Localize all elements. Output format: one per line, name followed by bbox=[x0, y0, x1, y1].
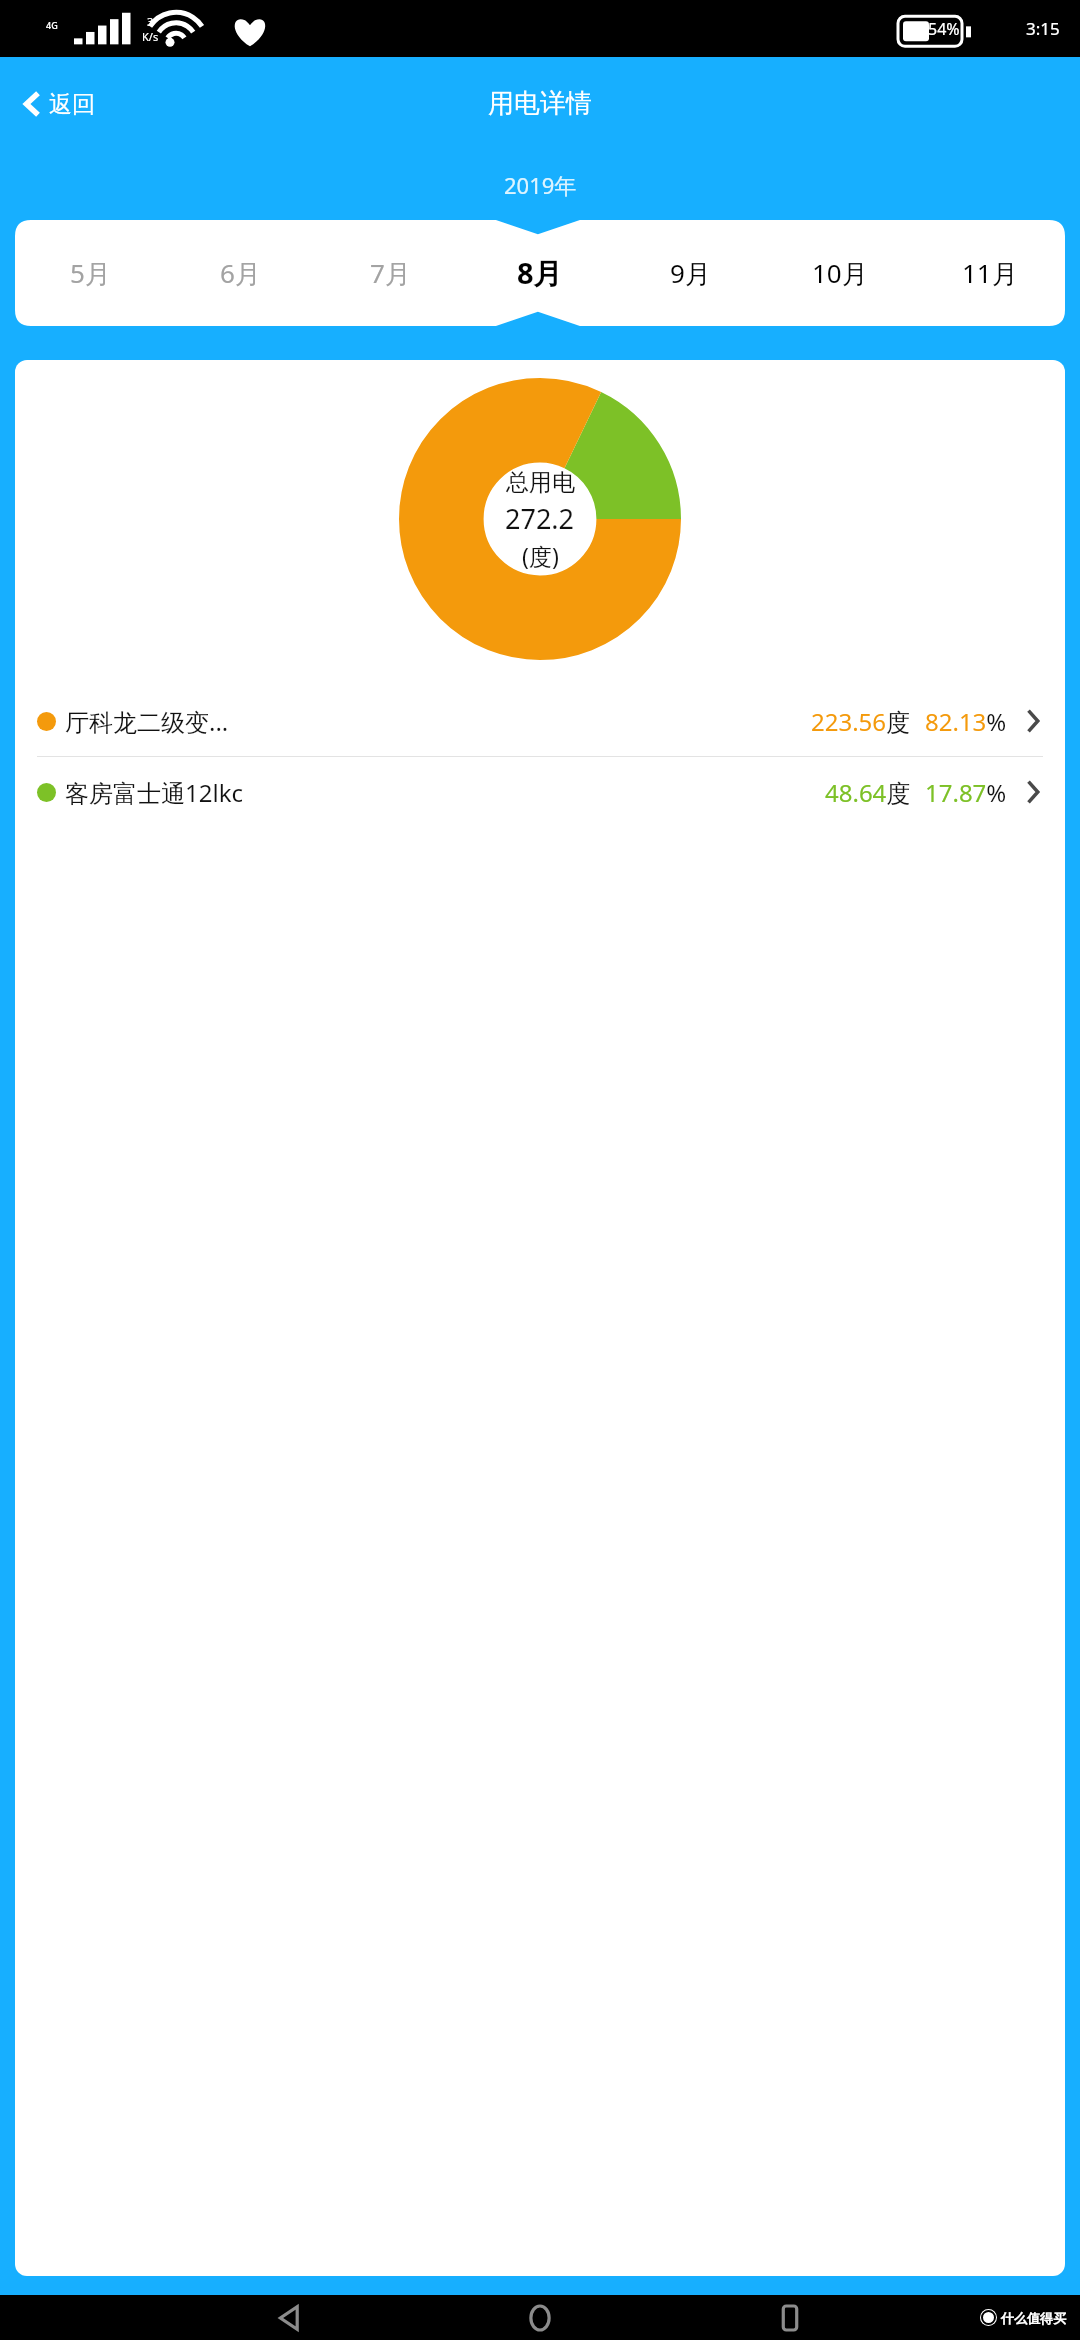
staticText: 2019年 bbox=[504, 170, 577, 200]
button[interactable]: Back bbox=[262, 2295, 318, 2340]
staticText: 4G bbox=[46, 19, 58, 31]
button[interactable]: 7月 bbox=[315, 220, 465, 326]
button[interactable]: 9月 bbox=[615, 220, 765, 326]
staticText: K/s bbox=[142, 29, 159, 44]
staticText: 什么值得买 bbox=[1001, 2310, 1066, 2326]
other: 查看详情 bbox=[1017, 705, 1049, 737]
button[interactable]: 6月 bbox=[165, 220, 315, 326]
button[interactable]: 10月 bbox=[765, 220, 915, 326]
button[interactable]: 5月 bbox=[15, 220, 165, 326]
staticText: 223.56度 bbox=[811, 705, 911, 738]
staticText: 返回 bbox=[49, 90, 95, 119]
staticText: 17.87% bbox=[925, 776, 1007, 809]
staticText: 8月 bbox=[517, 253, 563, 293]
button[interactable]: Home bbox=[512, 2295, 568, 2340]
staticText: 54% bbox=[928, 18, 960, 40]
staticText: 7月 bbox=[370, 255, 411, 291]
staticText: (度) bbox=[522, 540, 559, 571]
staticText: 总用电 bbox=[506, 468, 575, 497]
staticText: 82.13% bbox=[925, 705, 1007, 738]
staticText: 48.64度 bbox=[825, 776, 911, 809]
button[interactable]: Recents bbox=[762, 2295, 818, 2340]
staticText: 272.2 bbox=[505, 500, 575, 537]
button[interactable]: 11月 bbox=[915, 220, 1065, 326]
button[interactable]: 8月 bbox=[465, 220, 615, 326]
button[interactable]: 厅科龙二级变... bbox=[15, 686, 1065, 756]
staticText: 用电详情 bbox=[488, 87, 592, 120]
button[interactable]: 返回 bbox=[12, 81, 105, 127]
staticText: 客房富士通12lkc bbox=[65, 776, 243, 809]
staticText: 9月 bbox=[670, 255, 711, 291]
staticText: 11月 bbox=[962, 255, 1018, 291]
staticText: 3:15 bbox=[1026, 17, 1060, 40]
button[interactable]: 客房富士通12lkc bbox=[15, 757, 1065, 827]
staticText: 5月 bbox=[70, 255, 111, 291]
other: 查看详情 bbox=[1017, 776, 1049, 808]
staticText: 3 bbox=[147, 14, 154, 29]
staticText: 10月 bbox=[812, 255, 868, 291]
staticText: 6月 bbox=[220, 255, 261, 291]
staticText: 厅科龙二级变... bbox=[65, 705, 229, 738]
